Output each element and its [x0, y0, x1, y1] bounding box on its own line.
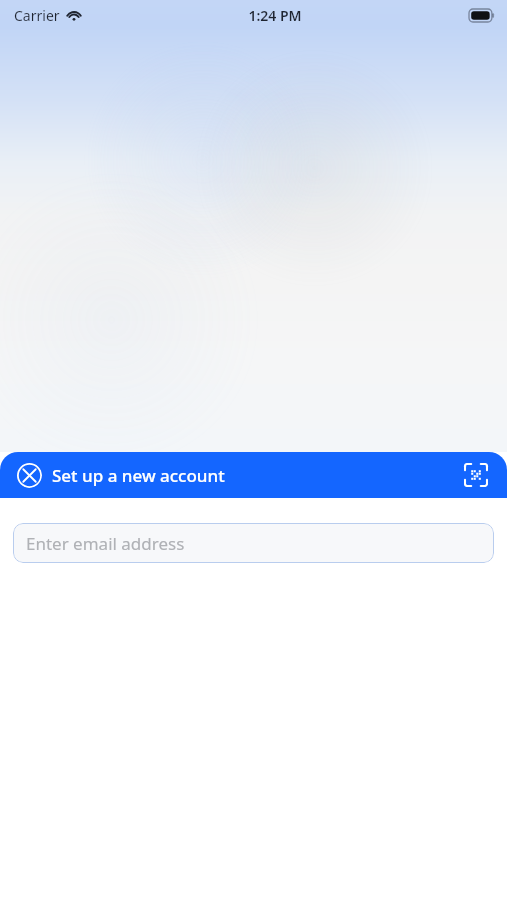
button[interactable]: Close	[0, 452, 507, 498]
staticText: Enter email address	[26, 532, 185, 555]
button[interactable]: Enter email address	[13, 523, 494, 563]
button[interactable]: Scan QR code	[461, 460, 491, 490]
staticText: Carrier	[14, 6, 60, 25]
staticText: Set up a new account	[52, 464, 225, 487]
staticText: 1:24 PM	[248, 6, 302, 25]
button[interactable]: Close	[16, 462, 42, 488]
